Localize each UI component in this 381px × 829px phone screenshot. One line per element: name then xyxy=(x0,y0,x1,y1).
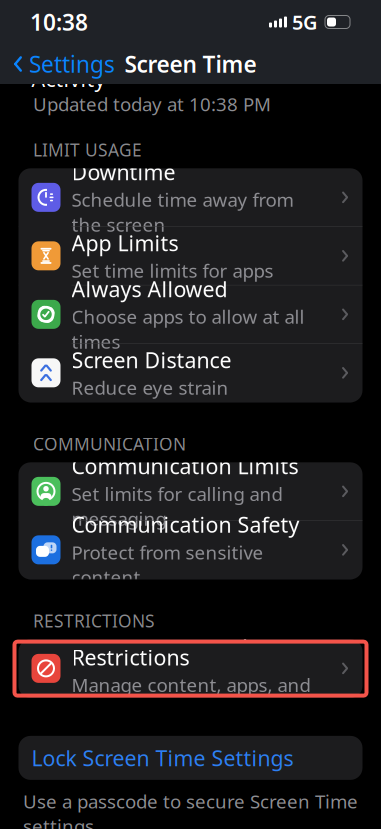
button[interactable]: Communication Safety xyxy=(18,521,362,579)
staticText: Use a passcode to secure Screen Time set… xyxy=(23,789,358,829)
staticText: App Limits xyxy=(71,229,178,257)
button[interactable]: Communication Limits xyxy=(18,462,362,521)
staticText: Set limits for calling and messaging xyxy=(71,481,282,531)
staticText: Communication Safety xyxy=(71,510,299,539)
staticText: Reduce eye strain xyxy=(71,375,228,400)
staticText: COMMUNICATION xyxy=(33,432,186,455)
button[interactable]: Screen Distance xyxy=(18,344,362,402)
staticText: Always Allowed xyxy=(71,275,227,303)
staticText: Schedule time away from the screen xyxy=(71,187,293,237)
staticText: Set time limits for apps xyxy=(71,258,273,283)
button[interactable]: Lock Screen Time Settings xyxy=(18,736,362,780)
staticText: See All App & Website Activity xyxy=(31,36,253,93)
button[interactable]: Content & Privacy Restrictions xyxy=(18,639,362,698)
button[interactable]: Settings xyxy=(0,44,127,84)
staticText: Updated today at 10:38 PM xyxy=(33,91,271,116)
staticText: Settings xyxy=(29,49,115,79)
staticText: Manage content, apps, and settings xyxy=(71,672,310,722)
button[interactable]: App Limits xyxy=(18,227,362,285)
staticText: RESTRICTIONS xyxy=(33,609,155,632)
staticText: Screen Time xyxy=(124,49,256,79)
staticText: Choose apps to allow at all times xyxy=(71,304,304,354)
staticText: LIMIT USAGE xyxy=(33,138,142,161)
staticText: Screen Distance xyxy=(71,346,231,374)
staticText: Content & Privacy Restrictions xyxy=(71,615,251,671)
staticText: 5G xyxy=(292,9,318,35)
staticText: Downtime xyxy=(71,158,175,186)
staticText: Protect from sensitive content xyxy=(71,540,263,589)
staticText: 10:38 xyxy=(30,7,88,37)
button[interactable]: Always Allowed xyxy=(18,285,362,344)
button[interactable]: Downtime xyxy=(18,168,362,227)
staticText: Lock Screen Time Settings xyxy=(31,744,293,772)
staticText: Communication Limits xyxy=(71,452,298,480)
